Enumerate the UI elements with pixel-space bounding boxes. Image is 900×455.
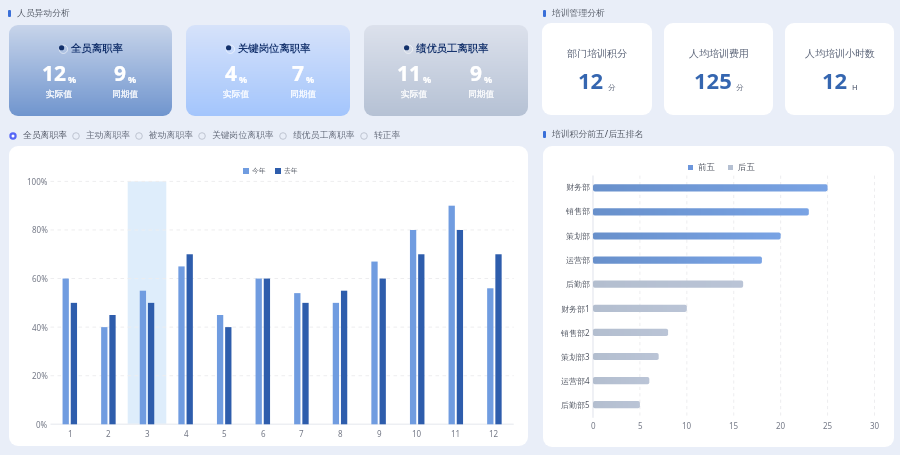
staticText: 实际值 [46, 89, 73, 100]
staticText: 9 [114, 59, 127, 88]
staticText: 30 [870, 420, 880, 431]
staticText: 8 [338, 428, 343, 439]
button[interactable]: 关键岗位离职率 [198, 128, 274, 143]
staticText: 人员异动分析 [17, 8, 70, 19]
staticText: % [423, 73, 432, 85]
staticText: 关键岗位离职率 [238, 42, 311, 55]
staticText: 后勤部5 [561, 399, 590, 410]
staticText: 同期值 [112, 89, 139, 100]
staticText: 7 [299, 428, 304, 439]
button[interactable]: 关键岗位离职率 [186, 25, 350, 116]
staticText: 6 [261, 428, 266, 439]
button[interactable]: 转正率 [360, 128, 401, 143]
staticText: 20 [776, 420, 786, 431]
staticText: 绩优员工离职率 [416, 42, 489, 55]
staticText: 7 [292, 59, 305, 88]
staticText: 运营部 [566, 255, 590, 265]
staticText: 3 [145, 428, 150, 439]
button[interactable]: 部门培训积分 [542, 23, 652, 115]
staticText: 9 [377, 428, 382, 439]
staticText: 10 [682, 420, 692, 431]
staticText: 销售部2 [561, 327, 590, 338]
staticText: 关键岗位离职率 [212, 130, 274, 141]
staticText: 今年 [252, 166, 266, 175]
staticText: % [306, 73, 315, 85]
staticText: 12 [822, 65, 848, 95]
other: 离职率月度柱状图 [9, 146, 528, 446]
staticText: 运营部4 [561, 375, 590, 386]
staticText: 15 [729, 420, 739, 431]
other: 培训积分排名条形图 [543, 146, 894, 447]
staticText: 后五 [738, 162, 755, 173]
staticText: 主动离职率 [86, 130, 130, 141]
staticText: 财务部1 [561, 303, 590, 314]
staticText: 全员离职率 [71, 42, 123, 55]
button[interactable]: 全员离职率 [9, 25, 172, 116]
staticText: 4 [225, 59, 238, 88]
staticText: 绩优员工离职率 [293, 130, 355, 141]
staticText: 12 [42, 59, 67, 88]
staticText: 12 [489, 428, 499, 439]
staticText: H [852, 82, 858, 92]
staticText: 全员离职率 [23, 130, 67, 141]
staticText: 前五 [698, 162, 715, 173]
staticText: 转正率 [374, 130, 401, 141]
staticText: 实际值 [401, 89, 428, 100]
button[interactable]: 全员离职率 [9, 128, 67, 143]
staticText: 人均培训小时数 [805, 47, 875, 60]
staticText: 0% [36, 419, 48, 430]
staticText: 人均培训费用 [689, 47, 749, 60]
staticText: 策划部 [566, 231, 590, 241]
staticText: 11 [451, 428, 461, 439]
staticText: 11 [397, 59, 422, 88]
staticText: 25 [823, 420, 833, 431]
staticText: 后勤部 [566, 279, 590, 289]
staticText: 40% [32, 322, 48, 333]
staticText: 2 [106, 428, 111, 439]
button[interactable]: 绩优员工离职率 [279, 128, 355, 143]
staticText: 100% [27, 176, 48, 187]
staticText: 80% [32, 224, 48, 235]
button[interactable]: 人均培训小时数 [785, 23, 894, 115]
staticText: 策划部3 [561, 351, 590, 362]
staticText: 去年 [284, 166, 298, 175]
staticText: 4 [184, 428, 189, 439]
staticText: 销售部 [566, 206, 590, 216]
staticText: 培训积分前五/后五排名 [552, 128, 644, 140]
button[interactable]: 被动离职率 [135, 128, 193, 143]
staticText: % [239, 73, 248, 85]
button[interactable]: 绩优员工离职率 [364, 25, 528, 116]
staticText: % [68, 73, 77, 85]
staticText: 12 [578, 65, 604, 95]
staticText: 财务部 [566, 182, 590, 192]
staticText: 0 [591, 420, 596, 431]
staticText: 60% [32, 273, 48, 284]
staticText: 被动离职率 [149, 130, 193, 141]
staticText: 分 [608, 83, 616, 92]
staticText: 同期值 [468, 89, 495, 100]
button[interactable]: 主动离职率 [72, 128, 130, 143]
staticText: 实际值 [223, 89, 250, 100]
button[interactable]: 人均培训费用 [664, 23, 773, 115]
staticText: 20% [32, 370, 48, 381]
staticText: 培训管理分析 [552, 8, 605, 19]
staticText: 分 [736, 83, 744, 92]
staticText: % [484, 73, 493, 85]
staticText: 5 [222, 428, 227, 439]
staticText: 同期值 [290, 89, 317, 100]
staticText: 9 [470, 59, 483, 88]
staticText: 125 [694, 65, 732, 95]
staticText: 10 [412, 428, 422, 439]
staticText: % [128, 73, 137, 85]
staticText: 5 [638, 420, 643, 431]
staticText: 部门培训积分 [567, 47, 627, 60]
staticText: 1 [68, 428, 73, 439]
